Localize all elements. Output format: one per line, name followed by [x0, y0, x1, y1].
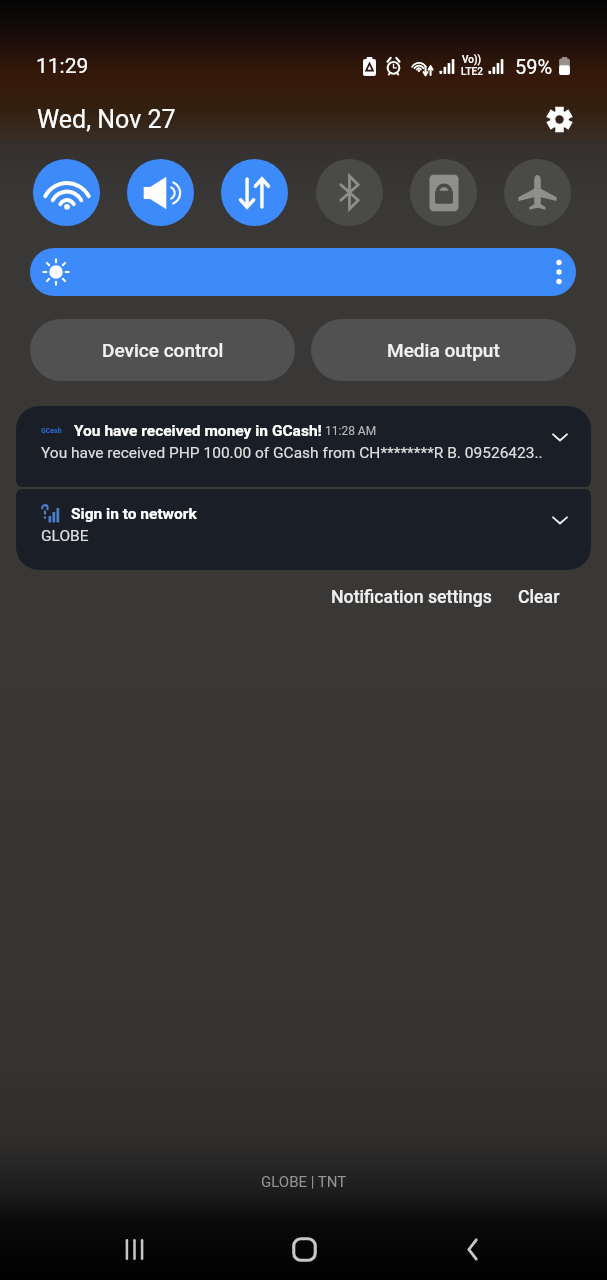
button[interactable]: Sign in to network [16, 489, 591, 570]
button[interactable]: Recents [94, 1218, 174, 1280]
staticText: Device control [102, 339, 224, 361]
button[interactable]: Expand notification [542, 419, 578, 455]
button[interactable]: Wi-Fi [33, 159, 100, 226]
button[interactable]: Clear [512, 579, 566, 616]
staticText: Clear [518, 587, 560, 608]
button[interactable]: Mobile data [221, 159, 288, 226]
staticText: You have received money in GCash! [74, 422, 322, 440]
button[interactable]: Bluetooth [316, 159, 383, 226]
button[interactable]: Airplane mode [504, 159, 571, 226]
button[interactable]: Notification settings [325, 579, 498, 616]
staticText: GLOBE | TNT [261, 1173, 347, 1191]
staticText: Notification settings [331, 587, 492, 608]
staticText: Media output [387, 339, 500, 361]
button[interactable]: Sound [127, 159, 194, 226]
staticText: GCash [41, 427, 62, 435]
button[interactable]: Brightness [30, 248, 576, 296]
staticText: 11:28 AM [325, 424, 377, 438]
button[interactable]: Media output [311, 319, 576, 381]
staticText: 59% [515, 55, 553, 78]
staticText: GLOBE [41, 527, 89, 545]
staticText: You have received PHP 100.00 of GCash fr… [41, 444, 543, 462]
staticText: Wed, Nov 27 [37, 105, 176, 133]
button[interactable]: Back [433, 1218, 513, 1280]
staticText: LTE2 [461, 66, 483, 78]
button[interactable]: Screen lock [410, 159, 477, 226]
button[interactable]: Home [264, 1218, 344, 1280]
button[interactable]: Expand notification [542, 502, 578, 538]
button[interactable]: GCash [16, 406, 591, 487]
staticText: Sign in to network [71, 505, 197, 523]
button[interactable]: Settings [542, 105, 576, 133]
button[interactable]: Device control [30, 319, 295, 381]
staticText: Vo)) [462, 54, 482, 66]
staticText: 11:29 [36, 54, 89, 78]
